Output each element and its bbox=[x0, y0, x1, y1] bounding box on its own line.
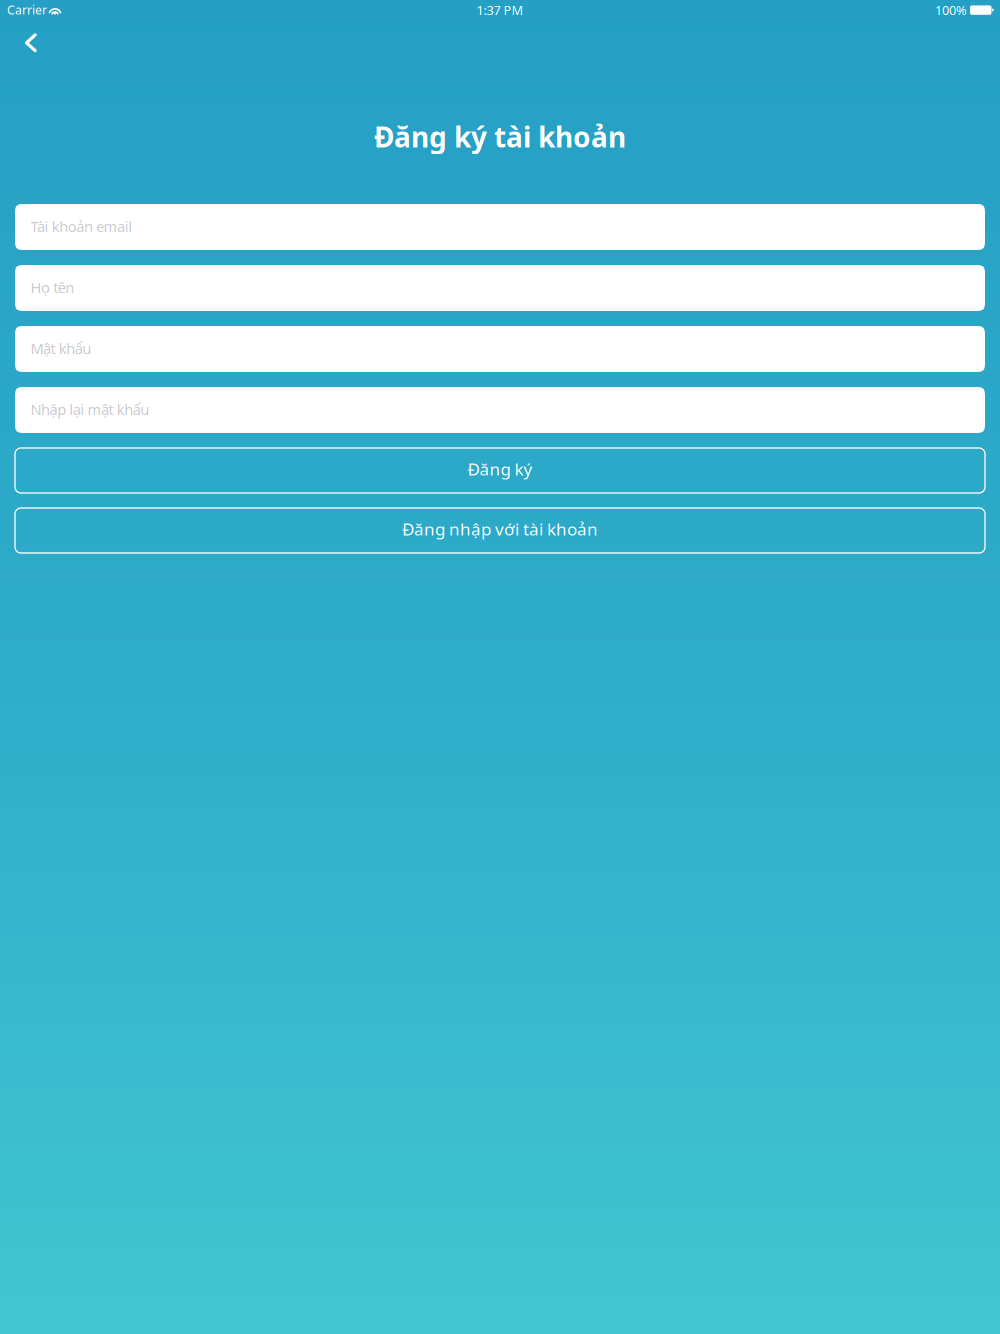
button[interactable]: Đăng ký bbox=[15, 448, 985, 493]
staticText: Carrier bbox=[7, 2, 47, 18]
button[interactable]: Nhập lại mật khẩu bbox=[15, 387, 985, 433]
staticText: Mật khẩu bbox=[30, 338, 91, 358]
staticText: Đăng ký bbox=[467, 458, 532, 480]
staticText: 1:37 PM bbox=[476, 2, 523, 19]
button[interactable]: Back bbox=[16, 23, 48, 63]
button[interactable]: Đăng nhập với tài khoản bbox=[15, 508, 985, 553]
button[interactable]: Họ tên bbox=[15, 265, 985, 311]
staticText: Đăng nhập với tài khoản bbox=[402, 518, 598, 540]
staticText: Tài khoản email bbox=[30, 216, 132, 236]
button[interactable]: Tài khoản email bbox=[15, 204, 985, 250]
staticText: Họ tên bbox=[30, 277, 74, 297]
staticText: Nhập lại mật khẩu bbox=[30, 399, 149, 419]
staticText: Đăng ký tài khoản bbox=[374, 118, 626, 155]
button[interactable]: Mật khẩu bbox=[15, 326, 985, 372]
staticText: 100% bbox=[935, 2, 967, 19]
